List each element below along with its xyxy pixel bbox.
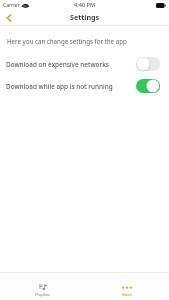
staticText: Download on expensive networks [6,60,109,69]
button[interactable]: Back [0,10,18,26]
staticText: Carrier [3,2,20,9]
button[interactable]: Download while app is not running [0,75,169,97]
button[interactable]: Playlists [0,273,84,300]
button[interactable]: Toggle off [136,57,160,71]
staticText: Settings [70,12,100,22]
staticText: Playlists [35,292,50,297]
staticText: Download while app is not running [6,82,113,91]
staticText: 4:40 PM [74,1,96,9]
staticText: Here you can change settings for the app [7,37,127,45]
button[interactable]: Download on expensive networks [0,53,169,75]
button[interactable]: More [84,273,169,300]
button[interactable]: Toggle on [136,79,160,93]
staticText: More [122,292,132,297]
